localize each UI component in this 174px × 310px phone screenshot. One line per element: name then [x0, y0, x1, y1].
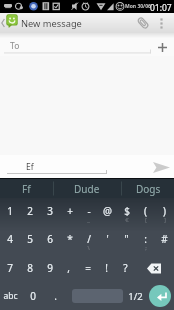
button[interactable]: - — [79, 198, 98, 226]
staticText: Dogs — [136, 182, 161, 196]
button[interactable]: 4 — [0, 226, 20, 254]
staticText: ? — [123, 261, 128, 275]
button[interactable]: @ — [98, 198, 117, 226]
button[interactable]: # — [155, 226, 174, 254]
button[interactable]: 1/2 — [125, 282, 145, 310]
staticText: # — [161, 232, 168, 246]
button[interactable]: . — [44, 282, 66, 310]
button[interactable]: abc — [0, 282, 21, 310]
staticText: € — [125, 216, 129, 224]
staticText: $ — [124, 204, 130, 218]
button[interactable]: 0 — [21, 282, 44, 310]
button[interactable]: ! — [97, 254, 116, 282]
button[interactable]: Ff — [0, 179, 54, 198]
staticText: 4 — [7, 232, 13, 246]
staticText: ) — [163, 204, 166, 218]
staticText: 3 — [47, 204, 53, 218]
button[interactable]: 6 — [40, 226, 60, 254]
button[interactable]: Attach — [132, 13, 154, 33]
button[interactable]: Enter — [149, 285, 171, 307]
staticText: ' — [106, 232, 109, 246]
button[interactable]: 7 — [0, 254, 20, 282]
button[interactable]: 3 — [40, 198, 60, 226]
button[interactable]: Send — [148, 155, 174, 179]
staticText: @ — [103, 204, 112, 218]
staticText: Ff — [22, 182, 31, 196]
staticText: Mon 30/06 — [125, 3, 151, 10]
staticText: , — [67, 261, 70, 275]
staticText: - — [87, 204, 91, 218]
staticText: 5 — [27, 232, 33, 246]
button[interactable]: * — [60, 226, 79, 254]
staticText: _ — [87, 216, 90, 224]
staticText: ] — [164, 216, 166, 224]
button[interactable]: $ — [117, 198, 136, 226]
staticText: ! — [105, 261, 108, 275]
staticText: * — [67, 232, 73, 246]
staticText: abc — [3, 290, 18, 302]
staticText: 01:07 — [150, 2, 172, 14]
button[interactable]: = — [78, 254, 97, 282]
button[interactable]: Backspace — [135, 254, 174, 282]
staticText: = — [85, 261, 91, 275]
staticText: 9 — [47, 261, 53, 275]
staticText: \ — [87, 244, 90, 252]
button[interactable]: + — [60, 198, 79, 226]
staticText: 7 — [7, 261, 13, 275]
staticText: 6 — [47, 232, 53, 246]
staticText: " — [124, 232, 129, 246]
staticText: Dude — [74, 182, 100, 196]
button[interactable]: More options — [154, 16, 168, 30]
button[interactable]: ( — [136, 198, 155, 226]
button[interactable]: ' — [98, 226, 117, 254]
button[interactable]: New message — [0, 13, 174, 33]
button[interactable]: 5 — [20, 226, 40, 254]
staticText: To — [10, 40, 20, 52]
staticText: ( — [144, 204, 147, 218]
staticText: + — [67, 204, 73, 218]
button[interactable]: 2 — [20, 198, 40, 226]
staticText: 2 — [27, 204, 33, 218]
button[interactable]: 1 — [0, 198, 20, 226]
button[interactable]: ) — [155, 198, 174, 226]
button[interactable]: " — [117, 226, 136, 254]
staticText: New message — [21, 17, 82, 30]
staticText: 1/2 — [128, 290, 143, 303]
staticText: Ef — [26, 161, 34, 173]
button[interactable]: Dogs — [120, 179, 174, 198]
button[interactable]: 8 — [20, 254, 40, 282]
button[interactable]: : — [136, 226, 155, 254]
button[interactable]: Dude — [59, 179, 115, 198]
staticText: ; — [145, 244, 147, 252]
button[interactable]: ? — [116, 254, 135, 282]
button[interactable]: 9 — [40, 254, 59, 282]
staticText: [ — [145, 216, 147, 224]
staticText: 8 — [27, 261, 33, 275]
staticText: 0 — [30, 289, 36, 303]
staticText: 1 — [7, 204, 13, 218]
staticText: . — [54, 289, 57, 303]
button[interactable]: Add recipient — [150, 38, 174, 56]
button[interactable]: , — [59, 254, 78, 282]
button[interactable]: / — [79, 226, 98, 254]
staticText: : — [144, 232, 147, 246]
staticText: / — [87, 232, 91, 246]
